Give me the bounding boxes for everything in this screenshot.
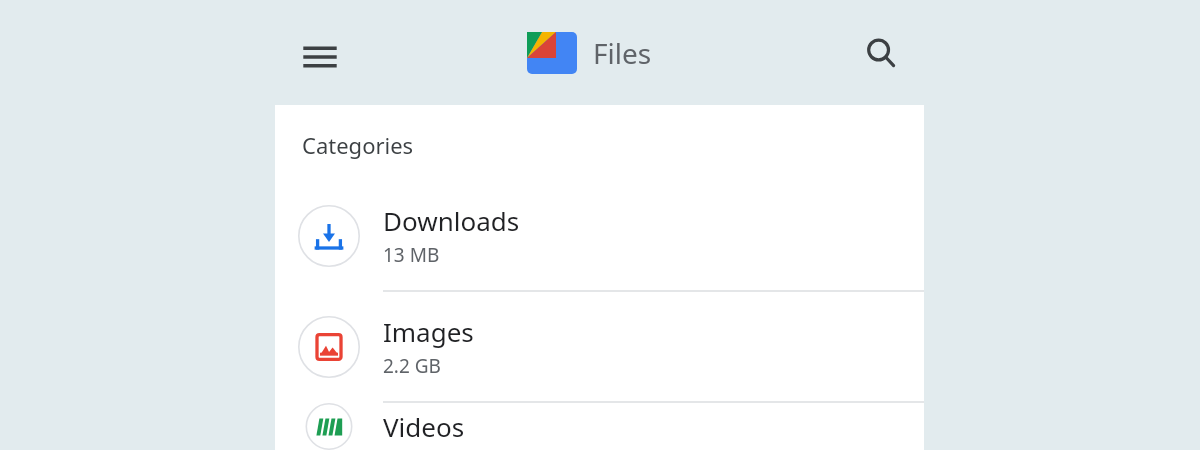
button[interactable]: Images xyxy=(275,292,924,401)
button[interactable]: Videos xyxy=(275,403,924,450)
staticText: Images xyxy=(383,314,474,349)
button[interactable]: Search xyxy=(852,24,910,82)
staticText: Videos xyxy=(383,409,465,444)
button[interactable]: Open navigation menu xyxy=(292,29,348,85)
staticText: 13 MB xyxy=(383,242,440,268)
button[interactable]: Downloads xyxy=(275,181,924,290)
staticText: Downloads xyxy=(383,203,520,238)
staticText: Categories xyxy=(302,130,414,160)
staticText: Files xyxy=(593,34,652,72)
staticText: 2.2 GB xyxy=(383,353,441,379)
